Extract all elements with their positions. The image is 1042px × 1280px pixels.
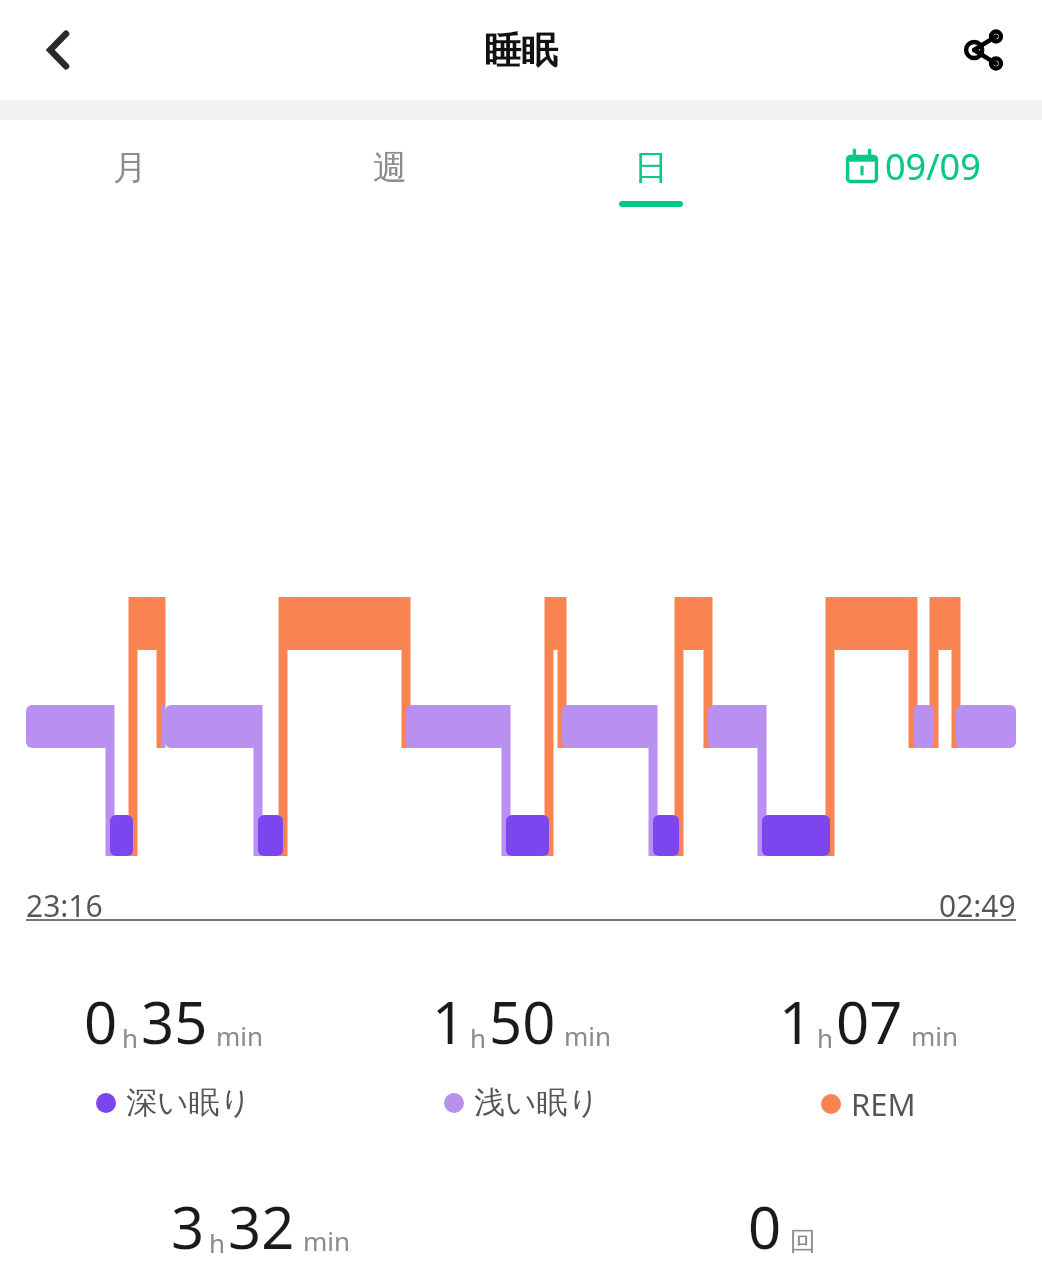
staticText: 深い眠り	[126, 1083, 252, 1122]
staticText: 睡眠	[484, 27, 558, 74]
button[interactable]: 09/09	[781, 120, 1042, 240]
staticText: 1	[779, 982, 813, 1061]
staticText: h	[209, 1225, 226, 1260]
staticText: 0	[748, 1187, 782, 1266]
staticText: 07	[836, 982, 903, 1061]
staticText: h	[470, 1020, 487, 1055]
staticText: min	[303, 1223, 351, 1258]
staticText: 浅い眠り	[474, 1083, 600, 1122]
button[interactable]: 週	[260, 120, 520, 240]
staticText: 50	[489, 982, 556, 1061]
staticText: 週	[373, 146, 407, 189]
staticText: min	[911, 1018, 959, 1053]
staticText: 09/09	[885, 142, 981, 191]
staticText: h	[817, 1020, 834, 1055]
staticText: 日	[634, 146, 668, 189]
staticText: 23:16	[26, 885, 103, 926]
staticText: 35	[141, 982, 208, 1061]
staticText: 02:49	[939, 885, 1016, 926]
staticText: 3	[171, 1187, 205, 1266]
staticText: 1	[432, 982, 466, 1061]
staticText: REM	[851, 1083, 916, 1125]
staticText: h	[122, 1020, 139, 1055]
staticText: 32	[228, 1187, 295, 1266]
staticText: min	[216, 1018, 264, 1053]
staticText: min	[564, 1018, 612, 1053]
staticText: 回	[790, 1225, 816, 1258]
button[interactable]: Back	[14, 5, 104, 95]
staticText: 月	[113, 146, 147, 189]
button[interactable]: Share	[938, 5, 1028, 95]
button[interactable]: 日	[520, 120, 781, 240]
staticText: 0	[84, 982, 118, 1061]
button[interactable]: 月	[0, 120, 260, 240]
